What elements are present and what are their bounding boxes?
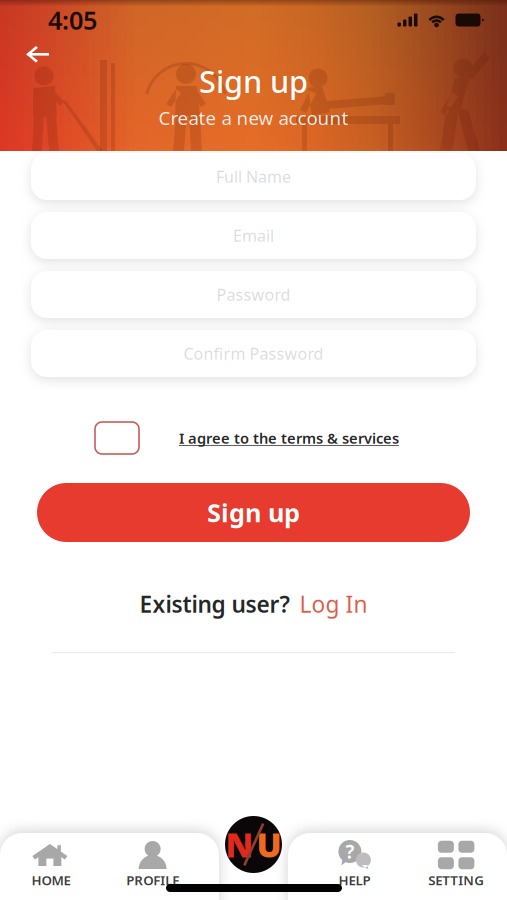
staticText: HELP bbox=[338, 871, 370, 889]
button[interactable]: Home bbox=[224, 816, 283, 873]
button[interactable]: PROFILE bbox=[102, 843, 204, 889]
staticText: Sign up bbox=[207, 496, 300, 529]
button[interactable]: Password bbox=[31, 271, 476, 318]
staticText: ? bbox=[345, 839, 354, 864]
staticText: Confirm Password bbox=[183, 343, 323, 364]
staticText: Create a new account bbox=[158, 105, 348, 130]
staticText: PROFILE bbox=[126, 871, 179, 889]
staticText: 4:05 bbox=[48, 3, 97, 37]
staticText: Sign up bbox=[199, 61, 308, 101]
staticText: U bbox=[256, 822, 281, 867]
button[interactable]: Sign up bbox=[37, 483, 470, 542]
button[interactable]: SETTING bbox=[405, 843, 507, 889]
staticText: Existing user? bbox=[139, 589, 289, 619]
button[interactable]: Log In bbox=[299, 589, 367, 619]
staticText: Log In bbox=[299, 589, 367, 619]
staticText: N bbox=[225, 822, 253, 867]
staticText: I agree to the terms & services bbox=[179, 428, 399, 448]
button[interactable]: Agree to terms bbox=[95, 422, 139, 454]
button[interactable]: I agree to the terms & services bbox=[139, 428, 399, 448]
staticText: Full Name bbox=[216, 166, 291, 187]
staticText: HOME bbox=[31, 871, 70, 889]
button[interactable]: Full Name bbox=[31, 153, 476, 200]
button[interactable]: HOME bbox=[0, 843, 102, 889]
staticText: SETTING bbox=[428, 871, 484, 889]
staticText: Email bbox=[233, 225, 274, 246]
button[interactable]: Confirm Password bbox=[31, 330, 476, 377]
button[interactable]: Back bbox=[18, 40, 58, 68]
button[interactable]: ? bbox=[303, 843, 405, 889]
staticText: Password bbox=[216, 284, 290, 305]
